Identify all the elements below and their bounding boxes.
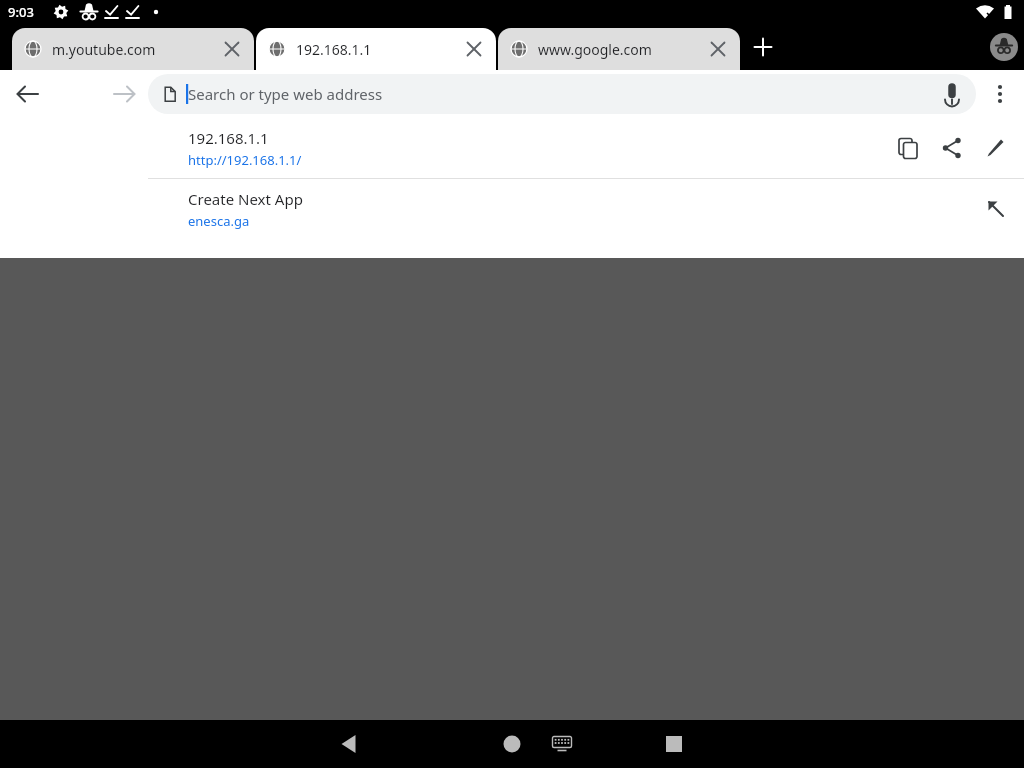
staticText: m.youtube.com — [52, 40, 156, 59]
staticText: enesca.ga — [188, 212, 250, 230]
button[interactable]: Forward — [106, 76, 142, 112]
button[interactable]: Search or type web address — [148, 74, 976, 114]
button[interactable]: Use this suggestion — [974, 187, 1018, 231]
button[interactable]: m.youtube.com — [12, 28, 254, 70]
staticText: 9:03 — [8, 3, 34, 21]
button[interactable]: 192.168.1.1 — [0, 118, 1024, 178]
button[interactable]: Close tab — [216, 33, 248, 65]
button[interactable]: Back — [10, 76, 46, 112]
staticText: www.google.com — [538, 40, 652, 59]
button[interactable]: 192.168.1.1 — [256, 28, 496, 70]
staticText: Search or type web address — [188, 84, 383, 104]
button[interactable]: Reload — [202, 76, 238, 112]
button[interactable]: New tab — [746, 30, 780, 64]
button[interactable]: Edit — [974, 126, 1018, 170]
button[interactable]: Keyboard — [544, 726, 580, 762]
button[interactable]: Copy — [886, 126, 930, 170]
button[interactable]: Back — [331, 726, 367, 762]
button[interactable]: Home — [494, 726, 530, 762]
staticText: http://192.168.1.1/ — [188, 151, 302, 169]
button[interactable]: More options — [982, 76, 1018, 112]
staticText: Create Next App — [188, 189, 303, 209]
staticText: 192.168.1.1 — [188, 128, 269, 148]
button[interactable]: Create Next App — [0, 179, 1024, 239]
staticText: 192.168.1.1 — [296, 40, 372, 59]
button[interactable]: Recent apps — [656, 726, 692, 762]
button[interactable]: Share — [930, 126, 974, 170]
button[interactable]: Close tab — [702, 33, 734, 65]
button[interactable]: Incognito profile — [988, 31, 1020, 63]
button[interactable]: Close tab — [458, 33, 490, 65]
button[interactable]: www.google.com — [498, 28, 740, 70]
button[interactable]: Voice search — [934, 76, 970, 112]
